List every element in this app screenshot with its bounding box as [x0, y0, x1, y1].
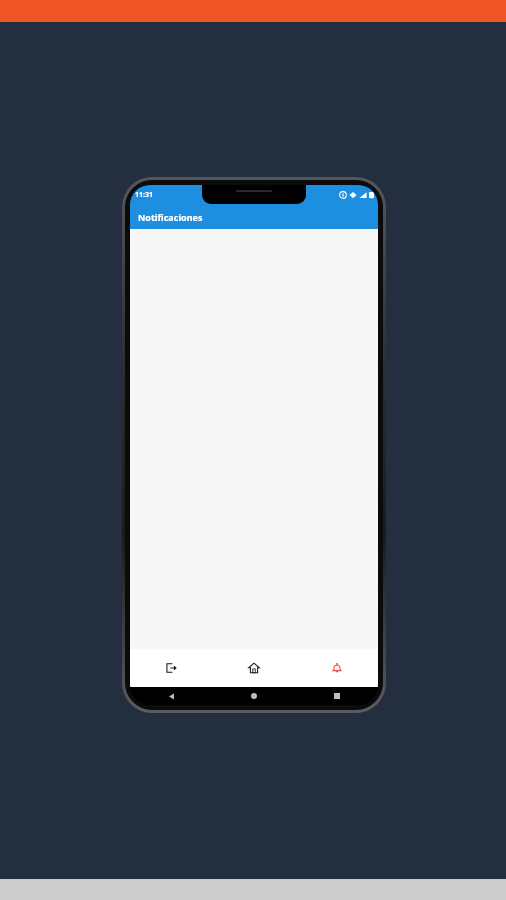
- staticText: Notificaciones: [138, 211, 203, 223]
- staticText: 11:31: [135, 190, 153, 200]
- button[interactable]: Cerrar sesión: [130, 649, 212, 687]
- button[interactable]: Notificaciones: [295, 649, 378, 687]
- button[interactable]: Inicio: [212, 649, 295, 687]
